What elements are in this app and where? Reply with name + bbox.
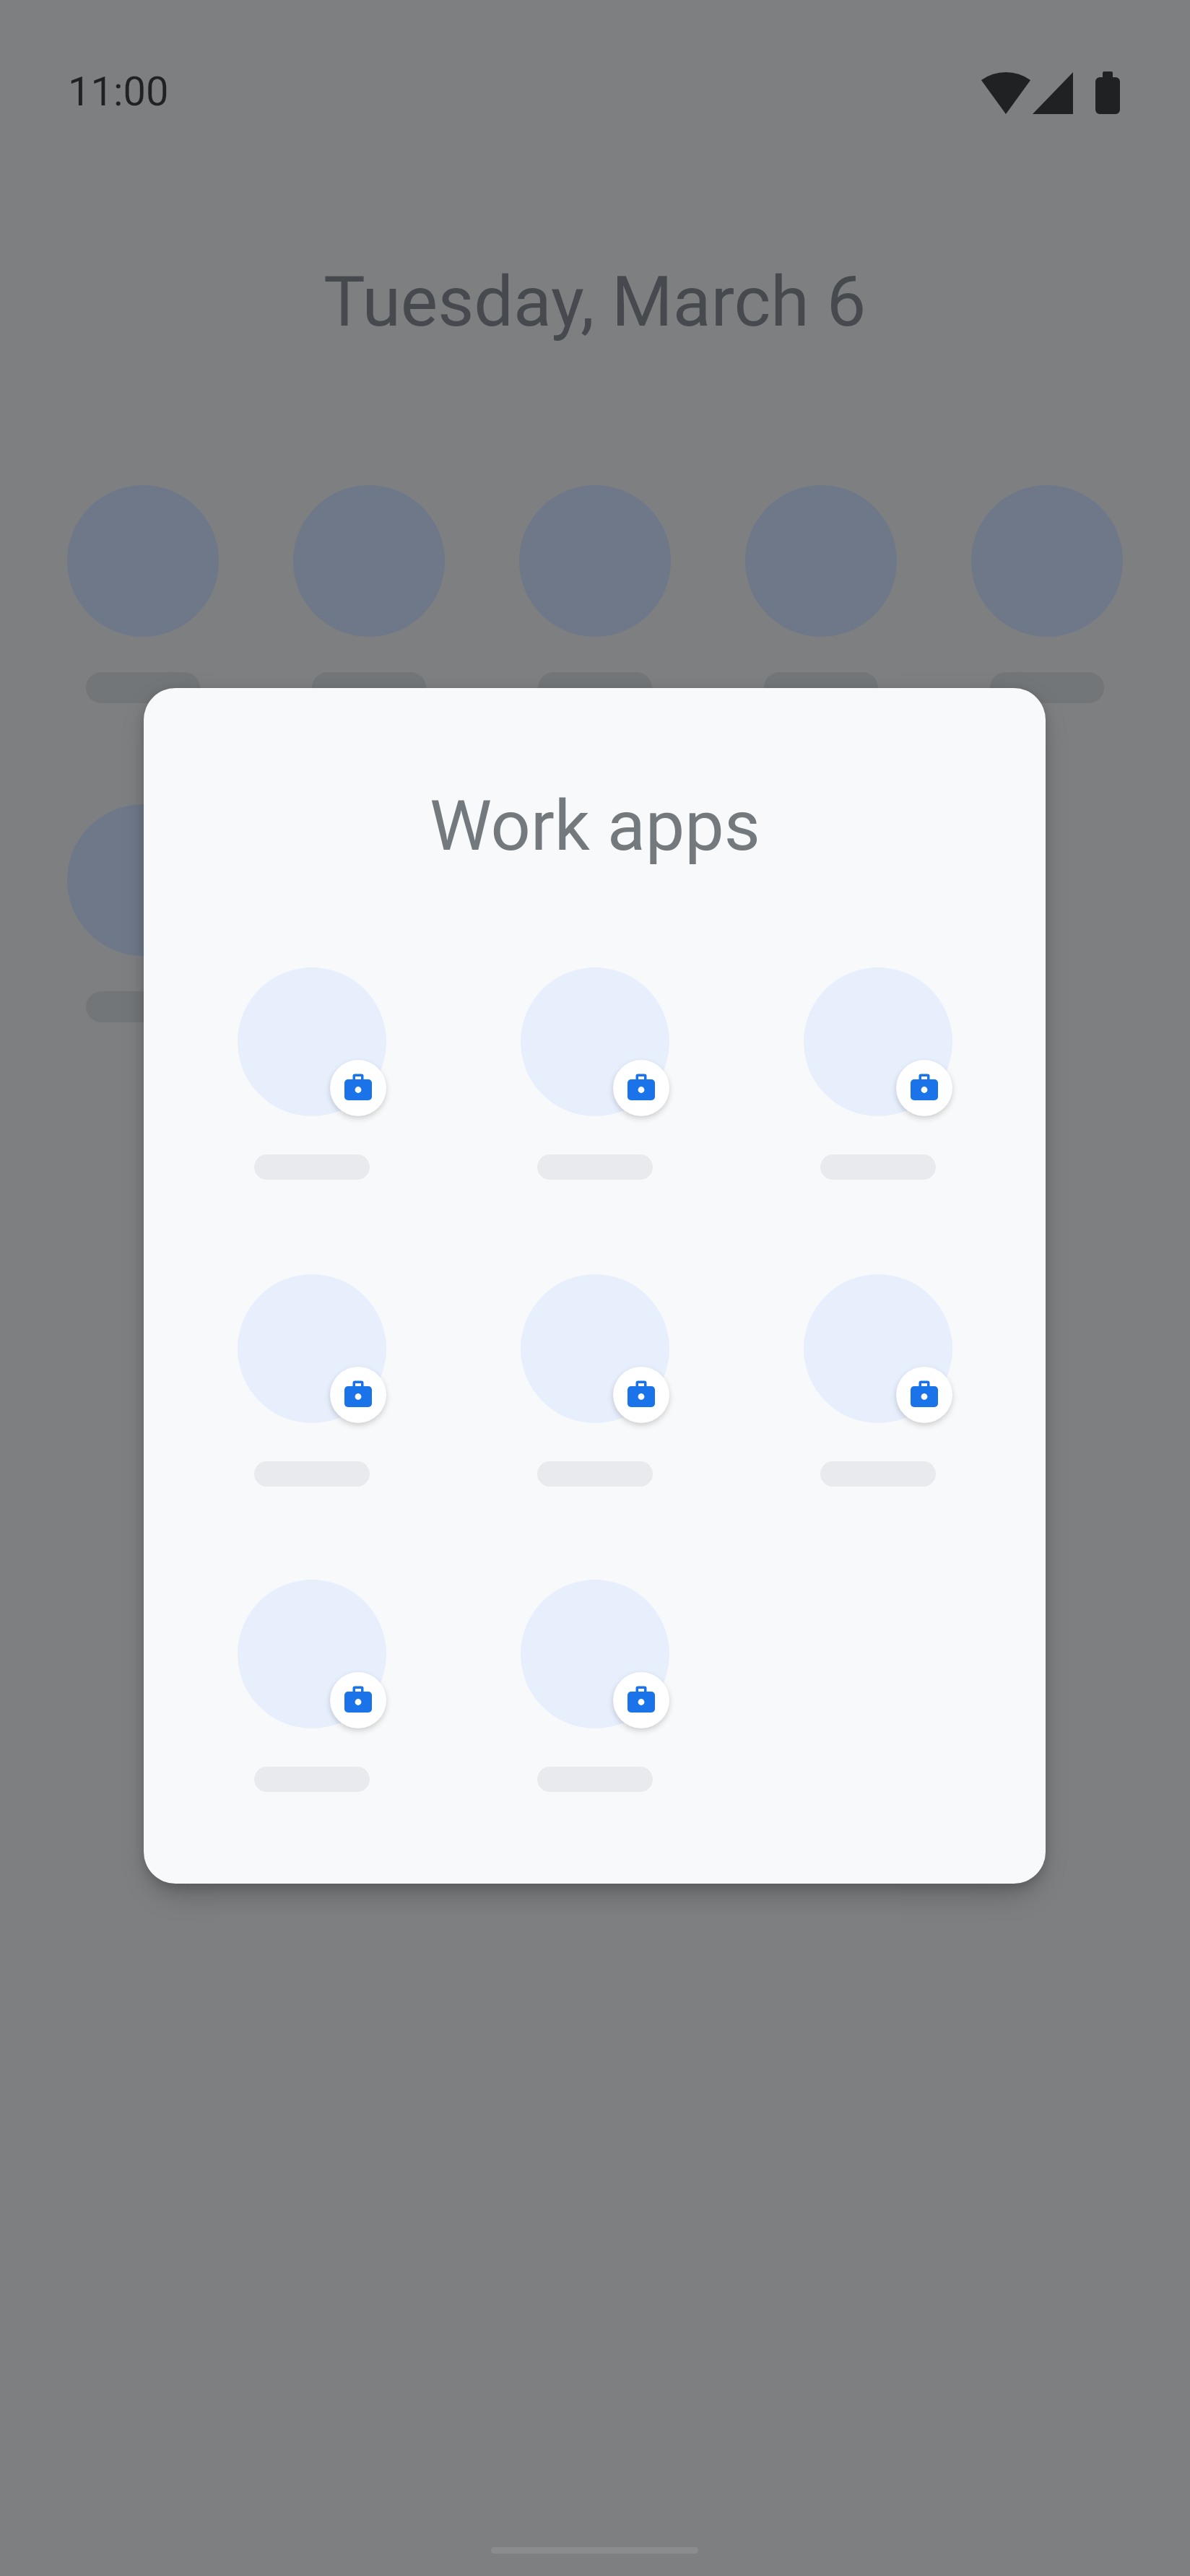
button[interactable] <box>804 1274 952 1487</box>
button[interactable] <box>971 485 1123 659</box>
button[interactable] <box>238 1274 386 1487</box>
button[interactable] <box>293 485 445 659</box>
button[interactable] <box>521 967 669 1180</box>
button[interactable] <box>804 967 952 1180</box>
button[interactable] <box>745 485 897 659</box>
button[interactable] <box>67 485 219 659</box>
staticText: Work apps <box>430 785 760 867</box>
staticText: 11:00 <box>68 68 169 116</box>
button[interactable] <box>238 967 386 1180</box>
button[interactable] <box>519 485 671 659</box>
button[interactable] <box>238 1580 386 1792</box>
button[interactable] <box>521 1580 669 1792</box>
button[interactable] <box>521 1274 669 1487</box>
button[interactable] <box>67 804 219 978</box>
staticText: Tuesday, March 6 <box>323 261 867 343</box>
